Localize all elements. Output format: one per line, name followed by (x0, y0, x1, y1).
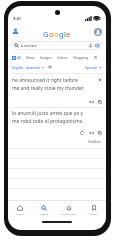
button[interactable]: Swap languages (47, 64, 52, 69)
staticText: W (94, 55, 98, 60)
button[interactable]: Copy (97, 130, 102, 135)
staticText: Videos (57, 55, 68, 60)
button[interactable]: Shopping (73, 55, 89, 60)
button[interactable]: Search (32, 201, 56, 218)
button[interactable]: Google Lens (95, 43, 100, 48)
button[interactable]: English - detected (12, 65, 44, 69)
staticText: Spanish (85, 65, 98, 69)
button[interactable]: Images (40, 55, 52, 60)
button[interactable]: Profile (94, 28, 102, 36)
staticText: 9:41 (13, 16, 21, 21)
button[interactable]: Clear (97, 77, 102, 82)
staticText: he announced it right before me and real… (12, 77, 97, 92)
button[interactable]: Videos (57, 55, 68, 60)
staticText: English - detected (12, 65, 40, 69)
staticText: g (59, 29, 64, 39)
staticText: Images (40, 55, 52, 60)
button[interactable]: W (94, 55, 98, 60)
staticText: All (17, 55, 21, 60)
staticText: Shopping (73, 55, 89, 60)
staticText: News (26, 55, 35, 60)
staticText: Notifications (61, 212, 76, 215)
staticText: translate (21, 43, 37, 48)
staticText: l (64, 29, 66, 39)
button[interactable]: Saved (81, 201, 106, 218)
button[interactable]: Listen (88, 99, 93, 104)
button[interactable]: Listen (88, 130, 93, 135)
button[interactable]: Account (11, 27, 20, 36)
staticText: Saved (90, 212, 97, 215)
button[interactable]: Feedback (88, 140, 101, 144)
button[interactable]: News (26, 55, 35, 60)
button[interactable]: Notifications (56, 201, 81, 218)
button[interactable]: Voice search (88, 43, 93, 48)
button[interactable]: Copy (97, 99, 102, 104)
staticText: o (49, 29, 54, 39)
staticText: Search (40, 212, 48, 215)
staticText: e (66, 29, 71, 39)
button[interactable]: All (12, 55, 21, 60)
staticText: o (54, 29, 59, 39)
staticText: Feedback (88, 140, 101, 144)
staticText: G (43, 29, 49, 39)
staticText: lo anunció justo antes que yo y me robó … (12, 110, 102, 125)
staticText: Home (16, 212, 24, 215)
button[interactable]: Home (8, 201, 32, 218)
button[interactable]: Spanish (85, 65, 102, 69)
button[interactable]: translate (11, 41, 103, 50)
button[interactable]: Rate translation (79, 130, 84, 135)
